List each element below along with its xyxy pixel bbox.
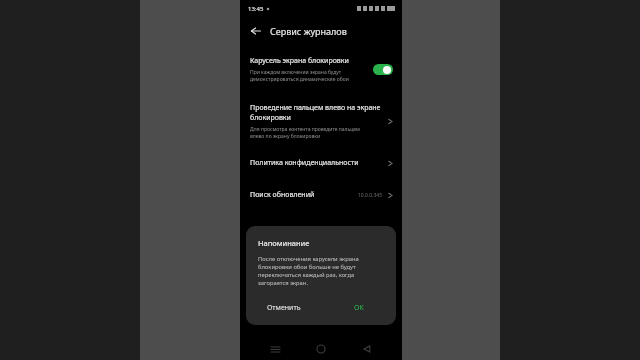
button[interactable]: Recent apps [264, 338, 286, 360]
button[interactable]: Home [310, 338, 332, 360]
button[interactable]: Проведение пальцем влево на экране блоки… [240, 98, 402, 145]
button[interactable]: Back [248, 23, 264, 39]
staticText: 10.0.0.345 [358, 192, 383, 199]
staticText: После отключения карусели экрана блокиро… [258, 255, 359, 287]
staticText: Поиск обновлений [250, 190, 315, 200]
staticText: OK [354, 303, 364, 313]
button[interactable] [373, 64, 393, 75]
staticText: Сервис журналов [270, 25, 347, 37]
staticText: 13:45 [248, 5, 264, 13]
staticText: При каждом включении экрана будут демонс… [250, 69, 349, 83]
staticText: Напоминание [258, 238, 310, 248]
staticText: Политика конфиденциальности [250, 158, 359, 168]
button[interactable]: Карусель экрана блокировки [240, 51, 402, 88]
button[interactable]: Back [356, 338, 378, 360]
staticText: Для просмотра контента проведите пальцем… [250, 126, 360, 140]
button[interactable]: OK [321, 299, 396, 317]
button[interactable]: Поиск обновлений [240, 183, 402, 207]
button[interactable]: Политика конфиденциальности [240, 151, 402, 175]
staticText: Отменить [267, 303, 301, 313]
staticText: Карусель экрана блокировки [250, 56, 349, 66]
button[interactable]: Отменить [246, 299, 321, 317]
staticText: Проведение пальцем влево на экране блоки… [250, 103, 381, 123]
